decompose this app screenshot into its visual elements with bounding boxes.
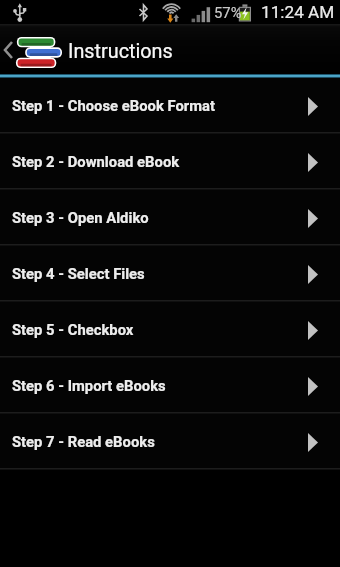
staticText: 11:24 AM xyxy=(261,2,335,22)
staticText: Step 3 - Open Aldiko xyxy=(12,209,149,226)
staticText: Step 1 - Choose eBook Format xyxy=(12,97,215,114)
button[interactable]: Step 6 - Import eBooks xyxy=(0,358,340,412)
staticText: Step 6 - Import eBooks xyxy=(12,377,166,394)
button[interactable]: Step 3 - Open Aldiko xyxy=(0,190,340,244)
button[interactable]: Step 7 - Read eBooks xyxy=(0,414,340,468)
staticText: Step 7 - Read eBooks xyxy=(12,433,155,450)
button[interactable]: Step 2 - Download eBook xyxy=(0,134,340,188)
button[interactable]: Navigate up xyxy=(0,34,68,65)
staticText: 57% xyxy=(214,4,242,21)
staticText: Step 5 - Checkbox xyxy=(12,321,134,338)
button[interactable]: Step 4 - Select Files xyxy=(0,246,340,300)
button[interactable]: Step 1 - Choose eBook Format xyxy=(0,78,340,132)
button[interactable]: Step 5 - Checkbox xyxy=(0,302,340,356)
staticText: Step 2 - Download eBook xyxy=(12,153,180,170)
staticText: Instructions xyxy=(68,40,173,63)
staticText: Step 4 - Select Files xyxy=(12,265,145,282)
